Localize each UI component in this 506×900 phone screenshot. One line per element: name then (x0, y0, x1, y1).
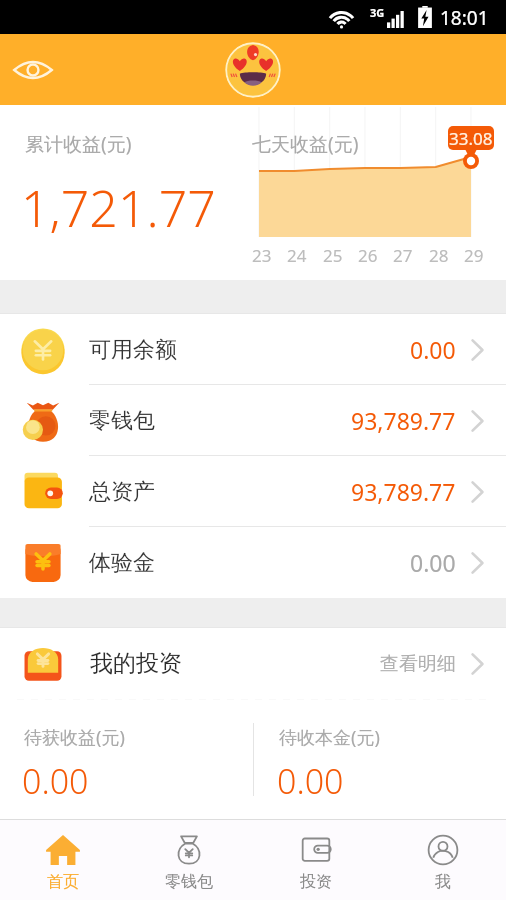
staticText: 0.00 (410, 334, 456, 365)
staticText: 0.00 (277, 758, 344, 804)
staticText: 23 (252, 244, 272, 267)
staticText: 我 (435, 872, 451, 892)
button[interactable]: 投资 (252, 820, 379, 900)
button[interactable]: 体验金 (0, 527, 506, 598)
staticText: 29 (464, 244, 484, 267)
staticText: 28 (429, 244, 449, 267)
staticText: 总资产 (89, 478, 155, 506)
staticText: 27 (393, 244, 413, 267)
staticText: 首页 (47, 872, 79, 892)
staticText: 0.00 (22, 758, 89, 804)
staticText: 33.08 (449, 127, 493, 150)
staticText: 累计收益(元) (25, 131, 132, 157)
button[interactable]: 可用余额 (0, 314, 506, 385)
staticText: 零钱包 (89, 407, 155, 435)
staticText: 93,789.77 (351, 405, 456, 436)
staticText: 25 (323, 244, 343, 267)
button[interactable]: 我的投资 (0, 628, 506, 699)
button[interactable]: Profile avatar (225, 42, 281, 98)
staticText: 0.00 (410, 547, 456, 578)
button[interactable]: 零钱包 (0, 385, 506, 456)
staticText: 3G (370, 5, 385, 20)
staticText: 查看明细 (380, 652, 456, 676)
staticText: 体验金 (89, 549, 155, 577)
staticText: 93,789.77 (351, 476, 456, 507)
staticText: 零钱包 (165, 872, 213, 892)
button[interactable]: 零钱包 (126, 820, 252, 900)
staticText: 投资 (300, 872, 332, 892)
button[interactable]: 我 (379, 820, 506, 900)
staticText: 26 (358, 244, 378, 267)
staticText: 待收本金(元) (279, 725, 380, 750)
staticText: 我的投资 (90, 649, 182, 678)
button[interactable]: Toggle amount visibility (4, 41, 62, 99)
staticText: 24 (287, 244, 307, 267)
staticText: 待获收益(元) (24, 725, 125, 750)
button[interactable]: 总资产 (0, 456, 506, 527)
staticText: 七天收益(元) (252, 131, 359, 157)
button[interactable]: 首页 (0, 820, 126, 900)
staticText: 1,721.77 (21, 174, 216, 242)
staticText: 可用余额 (89, 336, 177, 364)
staticText: 18:01 (440, 5, 489, 31)
